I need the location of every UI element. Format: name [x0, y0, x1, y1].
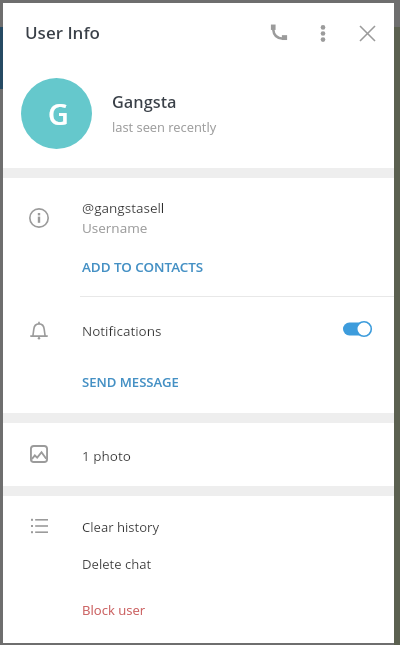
- staticText: SEND MESSAGE: [82, 373, 179, 391]
- button[interactable]: [3, 178, 394, 246]
- staticText: Username: [82, 219, 148, 237]
- staticText: Notifications: [82, 322, 162, 340]
- staticText: Clear history: [82, 518, 160, 536]
- button[interactable]: Notifications toggle: [336, 315, 378, 343]
- button[interactable]: User Info: [14, 9, 114, 55]
- button[interactable]: More options: [299, 10, 347, 56]
- button[interactable]: [3, 536, 394, 574]
- button[interactable]: Call: [255, 10, 303, 56]
- staticText: @gangstasell: [82, 199, 165, 217]
- staticText: Block user: [82, 601, 146, 619]
- button[interactable]: [3, 496, 394, 536]
- staticText: G: [48, 95, 69, 134]
- staticText: User Info: [25, 21, 100, 44]
- button[interactable]: [3, 423, 394, 486]
- button[interactable]: [3, 583, 394, 625]
- staticText: Delete chat: [82, 555, 152, 573]
- button[interactable]: [3, 297, 394, 347]
- staticText: Gangsta: [112, 91, 177, 113]
- staticText: last seen recently: [112, 118, 217, 136]
- button[interactable]: G: [21, 78, 92, 149]
- button[interactable]: [3, 362, 394, 408]
- button[interactable]: Close: [343, 10, 391, 56]
- staticText: ADD TO CONTACTS: [82, 258, 204, 276]
- staticText: 1 photo: [82, 447, 131, 465]
- button[interactable]: [3, 246, 394, 292]
